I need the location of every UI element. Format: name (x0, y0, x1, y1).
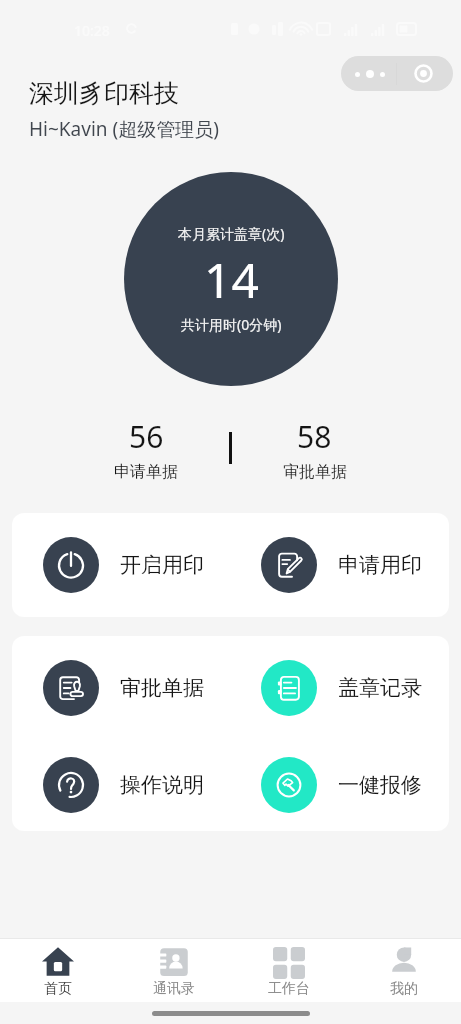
staticText: 我的 (390, 980, 418, 998)
staticText: 通讯录 (153, 980, 195, 998)
staticText: 审批单据 (120, 675, 204, 701)
button[interactable]: 审批单据 (12, 660, 230, 716)
button[interactable]: 操作说明 (12, 757, 230, 813)
staticText: 深圳豸印科技 (29, 78, 179, 109)
staticText: 一健报修 (338, 772, 422, 798)
staticText: 盖章记录 (338, 675, 422, 701)
staticText: Hi~Kavin (超级管理员) (29, 116, 219, 142)
staticText: 申请单据 (114, 462, 178, 482)
staticText: 本月累计盖章(次) (178, 224, 285, 243)
staticText: 首页 (44, 980, 72, 998)
staticText: 申请用印 (338, 552, 422, 578)
staticText: 审批单据 (283, 462, 347, 482)
button[interactable]: 我的 (346, 939, 461, 1002)
button[interactable]: 首页 (0, 939, 116, 1002)
staticText: 操作说明 (120, 772, 204, 798)
staticText: 共计用时(0分钟) (181, 315, 282, 334)
button[interactable]: 一健报修 (230, 757, 449, 813)
button[interactable]: 工作台 (231, 939, 346, 1002)
staticText: 58 (297, 416, 332, 457)
button[interactable]: 开启用印 (12, 513, 230, 617)
staticText: 14 (204, 247, 259, 312)
button[interactable]: 申请用印 (230, 513, 449, 617)
staticText: 工作台 (268, 980, 310, 998)
staticText: 开启用印 (120, 552, 204, 578)
button[interactable]: 盖章记录 (230, 660, 449, 716)
button[interactable]: More options (341, 56, 453, 91)
button[interactable]: 通讯录 (116, 939, 231, 1002)
staticText: 56 (129, 416, 164, 457)
